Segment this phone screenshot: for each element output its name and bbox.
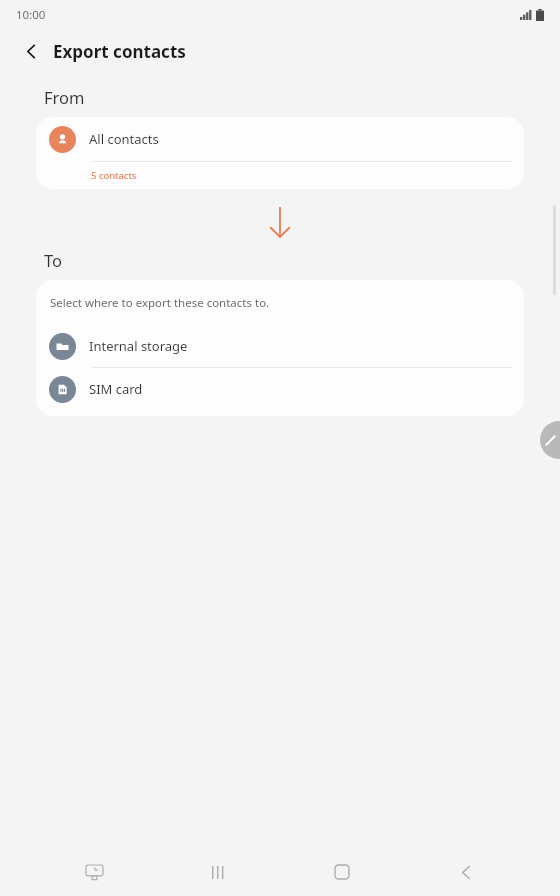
staticText: 10:00: [16, 7, 46, 23]
button[interactable]: All contacts: [36, 117, 524, 161]
staticText: To: [44, 249, 63, 271]
staticText: All contacts: [89, 130, 159, 148]
button[interactable]: Back: [14, 34, 48, 68]
button[interactable]: Home: [312, 850, 372, 894]
staticText: Select where to export these contacts to…: [50, 295, 270, 311]
button[interactable]: Screen capture: [64, 850, 124, 894]
staticText: SIM card: [89, 380, 143, 398]
staticText: From: [44, 86, 85, 108]
button[interactable]: Back: [436, 850, 496, 894]
button[interactable]: Edit: [540, 421, 560, 459]
button[interactable]: Internal storage: [36, 325, 524, 367]
staticText: Internal storage: [89, 337, 188, 355]
staticText: 5 contacts: [91, 169, 137, 182]
staticText: Export contacts: [53, 40, 186, 63]
button[interactable]: SIM card: [36, 368, 524, 410]
button[interactable]: Recents: [188, 850, 248, 894]
